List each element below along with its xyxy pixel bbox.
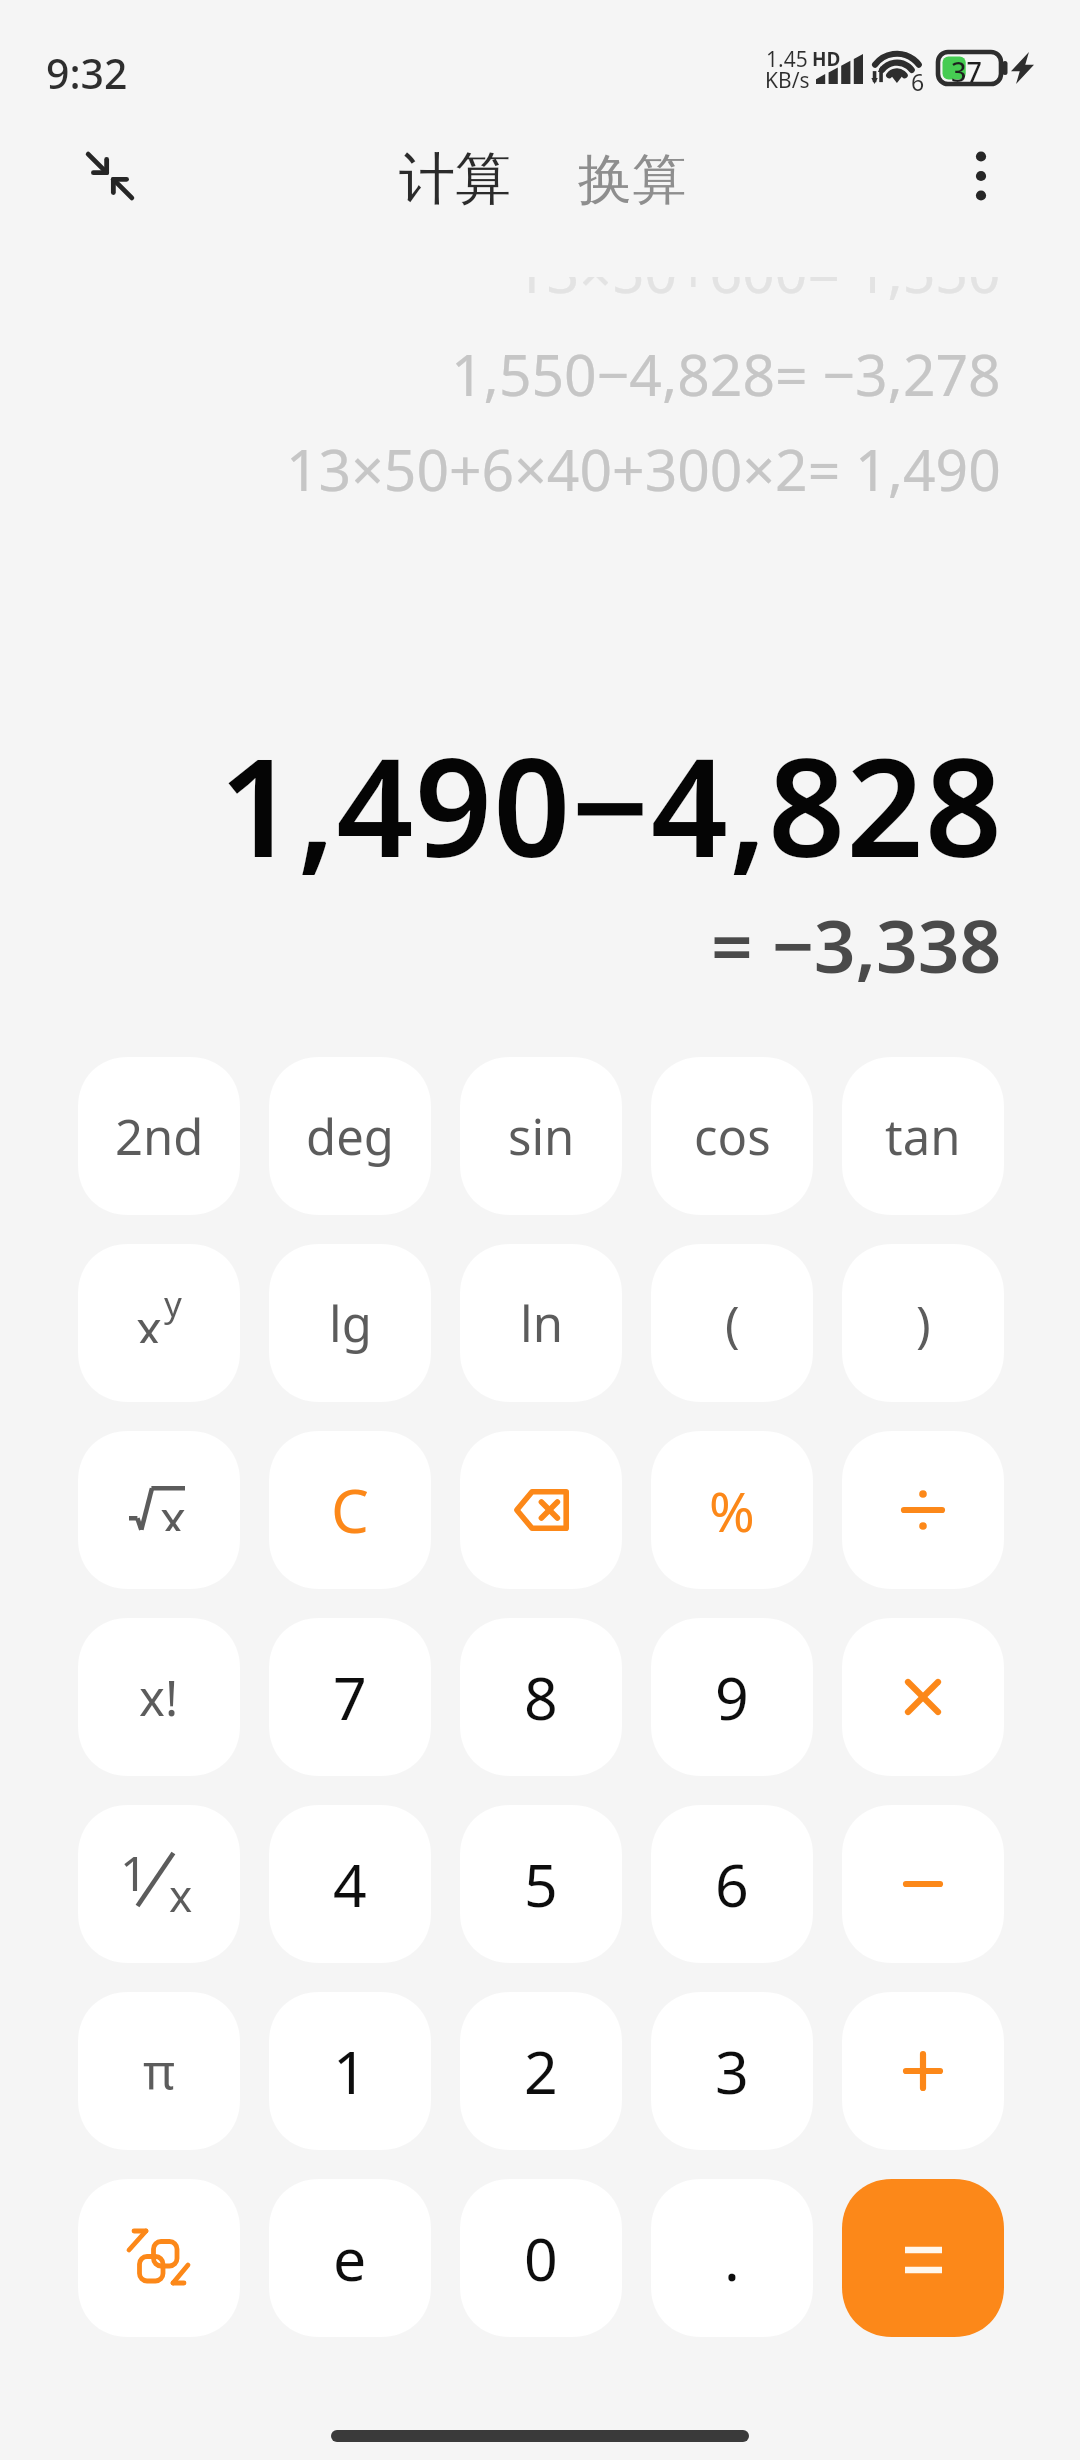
staticText: HD	[812, 46, 841, 72]
button[interactable]: cos	[651, 1057, 813, 1215]
button[interactable]: 3	[651, 1992, 813, 2150]
staticText: 1,490−4,828	[219, 713, 1004, 897]
staticText: %	[709, 1473, 755, 1548]
button[interactable]: Collapse	[62, 128, 158, 224]
staticText: 4	[333, 1844, 367, 1924]
button[interactable]: More options	[933, 128, 1029, 224]
button[interactable]: Plus	[842, 1992, 1004, 2150]
button[interactable]: More functions	[78, 2179, 240, 2337]
staticText: ln	[520, 1290, 563, 1357]
staticText: 9:32	[46, 45, 128, 101]
button[interactable]: 4	[269, 1805, 431, 1963]
button[interactable]: Backspace	[460, 1431, 622, 1589]
button[interactable]: One divided by x	[78, 1805, 240, 1963]
button[interactable]: 6	[651, 1805, 813, 1963]
button[interactable]: (	[651, 1244, 813, 1402]
staticText: C	[331, 1469, 369, 1551]
button[interactable]: Minus	[842, 1805, 1004, 1963]
staticText: 2nd	[115, 1103, 204, 1170]
staticText: .	[724, 2218, 740, 2298]
button[interactable]: 8	[460, 1618, 622, 1776]
staticText: 1	[120, 1840, 148, 1895]
button[interactable]: x to the power of y	[78, 1244, 240, 1402]
button[interactable]: 9	[651, 1618, 813, 1776]
button[interactable]: 5	[460, 1805, 622, 1963]
staticText: 37	[951, 53, 982, 85]
staticText: 1.45	[766, 45, 808, 74]
button[interactable]: ln	[460, 1244, 622, 1402]
button[interactable]: %	[651, 1431, 813, 1589]
button[interactable]: lg	[269, 1244, 431, 1402]
staticText: tan	[885, 1103, 961, 1170]
staticText: x	[169, 1865, 193, 1920]
staticText: )	[916, 1290, 931, 1357]
button[interactable]: 2nd	[78, 1057, 240, 1215]
button[interactable]: tan	[842, 1057, 1004, 1215]
button[interactable]: Square root	[78, 1431, 240, 1589]
staticText: x!	[139, 1664, 179, 1731]
staticText: 13×50+600= 1,550	[514, 277, 1001, 310]
staticText: = −3,338	[711, 895, 1002, 994]
button[interactable]: sin	[460, 1057, 622, 1215]
button[interactable]: C	[269, 1431, 431, 1589]
staticText: 0	[524, 2218, 558, 2298]
staticText: (	[725, 1290, 740, 1357]
button[interactable]: 1	[269, 1992, 431, 2150]
staticText: 3	[715, 2031, 749, 2111]
staticText: 1,550−4,828= −3,278	[451, 335, 1001, 413]
staticText: 换算	[578, 146, 686, 214]
staticText: deg	[306, 1103, 394, 1170]
button[interactable]: 7	[269, 1618, 431, 1776]
staticText: x	[136, 1295, 162, 1343]
button[interactable]: e	[269, 2179, 431, 2337]
button[interactable]: deg	[269, 1057, 431, 1215]
button[interactable]: )	[842, 1244, 1004, 1402]
button[interactable]: π	[78, 1992, 240, 2150]
staticText: 1	[333, 2031, 367, 2111]
staticText: y	[164, 1280, 182, 1328]
staticText: KB/s	[765, 66, 810, 95]
button[interactable]: 计算	[379, 130, 531, 229]
button[interactable]: .	[651, 2179, 813, 2337]
staticText: x	[160, 1485, 186, 1531]
staticText: sin	[508, 1103, 575, 1170]
button[interactable]: Equals	[842, 2179, 1004, 2337]
staticText: 7	[333, 1657, 367, 1737]
button[interactable]: Divide	[842, 1431, 1004, 1589]
button[interactable]: 0	[460, 2179, 622, 2337]
staticText: π	[143, 2038, 175, 2105]
button[interactable]: x!	[78, 1618, 240, 1776]
staticText: 8	[524, 1657, 558, 1737]
staticText: e	[333, 2218, 367, 2298]
staticText: 13×50+6×40+300×2= 1,490	[286, 430, 1001, 507]
staticText: 计算	[399, 144, 511, 215]
staticText: lg	[329, 1290, 372, 1357]
staticText: cos	[694, 1103, 771, 1170]
button[interactable]: 换算	[558, 132, 706, 228]
button[interactable]: Multiply	[842, 1618, 1004, 1776]
staticText: 9	[715, 1657, 749, 1737]
staticText: 6	[715, 1844, 749, 1924]
button[interactable]: 2	[460, 1992, 622, 2150]
staticText: 6	[911, 66, 925, 97]
staticText: 5	[524, 1844, 558, 1924]
staticText: 2	[524, 2031, 558, 2111]
